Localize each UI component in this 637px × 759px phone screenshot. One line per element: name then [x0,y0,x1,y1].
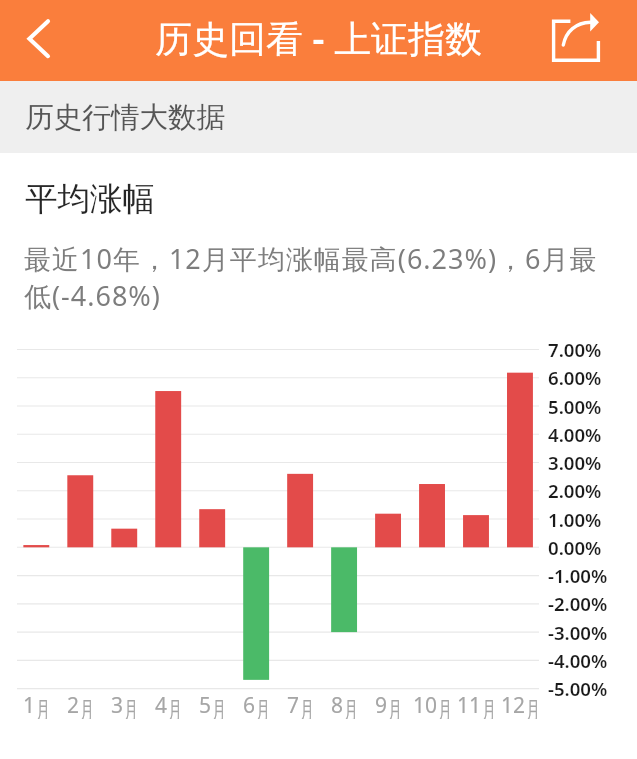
staticText: 1.00% [548,507,602,532]
staticText: 月 [482,695,496,719]
staticText: -1.00% [548,563,608,588]
staticText: -2.00% [548,591,608,616]
staticText: 10 [413,691,438,719]
staticText: 历史回看 - 上证指数 [155,12,483,63]
staticText: 7.00% [548,337,602,362]
staticText: 3 [111,691,124,719]
staticText: 3.00% [548,450,602,475]
staticText: 月 [256,695,270,719]
staticText: 月 [168,695,182,719]
staticText: 11 [457,691,482,719]
staticText: -3.00% [548,620,608,645]
staticText: 2.00% [548,478,602,503]
staticText: 月 [344,695,358,719]
staticText: 4 [155,691,168,719]
staticText: 月 [526,695,540,719]
staticText: 12 [501,691,526,719]
staticText: 5 [199,691,212,719]
staticText: 月 [124,695,138,719]
staticText: 月 [212,695,226,719]
staticText: 历史行情大数据 [25,99,226,135]
staticText: 月 [36,695,50,719]
staticText: 5.00% [548,394,602,419]
staticText: 月 [388,695,402,719]
staticText: 0.00% [548,535,602,560]
button[interactable]: Share [547,0,637,81]
staticText: 8 [331,691,344,719]
staticText: -4.00% [548,648,608,673]
staticText: 2 [67,691,80,719]
staticText: 6.00% [548,365,602,390]
staticText: 1 [23,691,36,719]
staticText: 平均涨幅 [25,179,155,220]
staticText: 7 [287,691,300,719]
staticText: -5.00% [548,676,608,701]
staticText: 9 [375,691,388,719]
button[interactable]: Back [0,0,78,81]
staticText: 月 [80,695,94,719]
staticText: 月 [438,695,452,719]
staticText: 6 [243,691,256,719]
staticText: 4.00% [548,422,602,447]
staticText: 最近10年，12月平均涨幅最高(6.23%)，6月最 低(-4.68%) [24,240,598,314]
staticText: 月 [300,695,314,719]
